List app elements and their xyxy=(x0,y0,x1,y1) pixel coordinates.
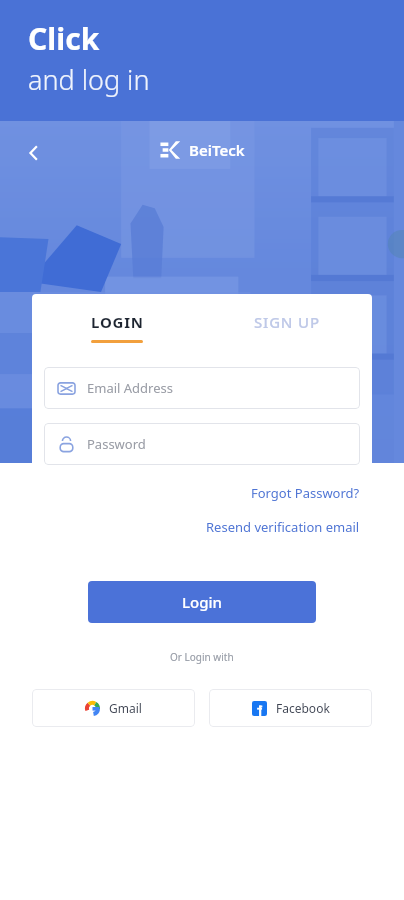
button[interactable]: Back xyxy=(16,135,52,171)
button[interactable]: LOGIN xyxy=(32,312,202,343)
staticText: LOGIN xyxy=(91,312,144,332)
staticText: Facebook xyxy=(276,700,330,716)
staticText: Email Address xyxy=(87,379,173,397)
button[interactable]: Password xyxy=(44,423,360,465)
staticText: Or Login with xyxy=(170,650,234,664)
staticText: Click xyxy=(28,18,100,59)
button[interactable]: Email Address xyxy=(44,367,360,409)
button[interactable]: SIGN UP xyxy=(202,312,372,332)
button[interactable]: Gmail xyxy=(32,689,195,727)
button[interactable]: Resend verification email xyxy=(206,515,360,539)
button[interactable]: Facebook xyxy=(209,689,372,727)
staticText: BeiTeck xyxy=(189,140,245,160)
staticText: Resend verification email xyxy=(206,518,360,536)
staticText: and log in xyxy=(28,61,150,98)
staticText: Login xyxy=(182,592,222,612)
staticText: SIGN UP xyxy=(254,312,320,332)
staticText: Password xyxy=(87,435,146,453)
staticText: Forgot Password? xyxy=(251,484,360,502)
button[interactable]: Forgot Password? xyxy=(251,481,360,505)
staticText: Gmail xyxy=(109,700,142,716)
button[interactable]: Login xyxy=(88,581,316,623)
